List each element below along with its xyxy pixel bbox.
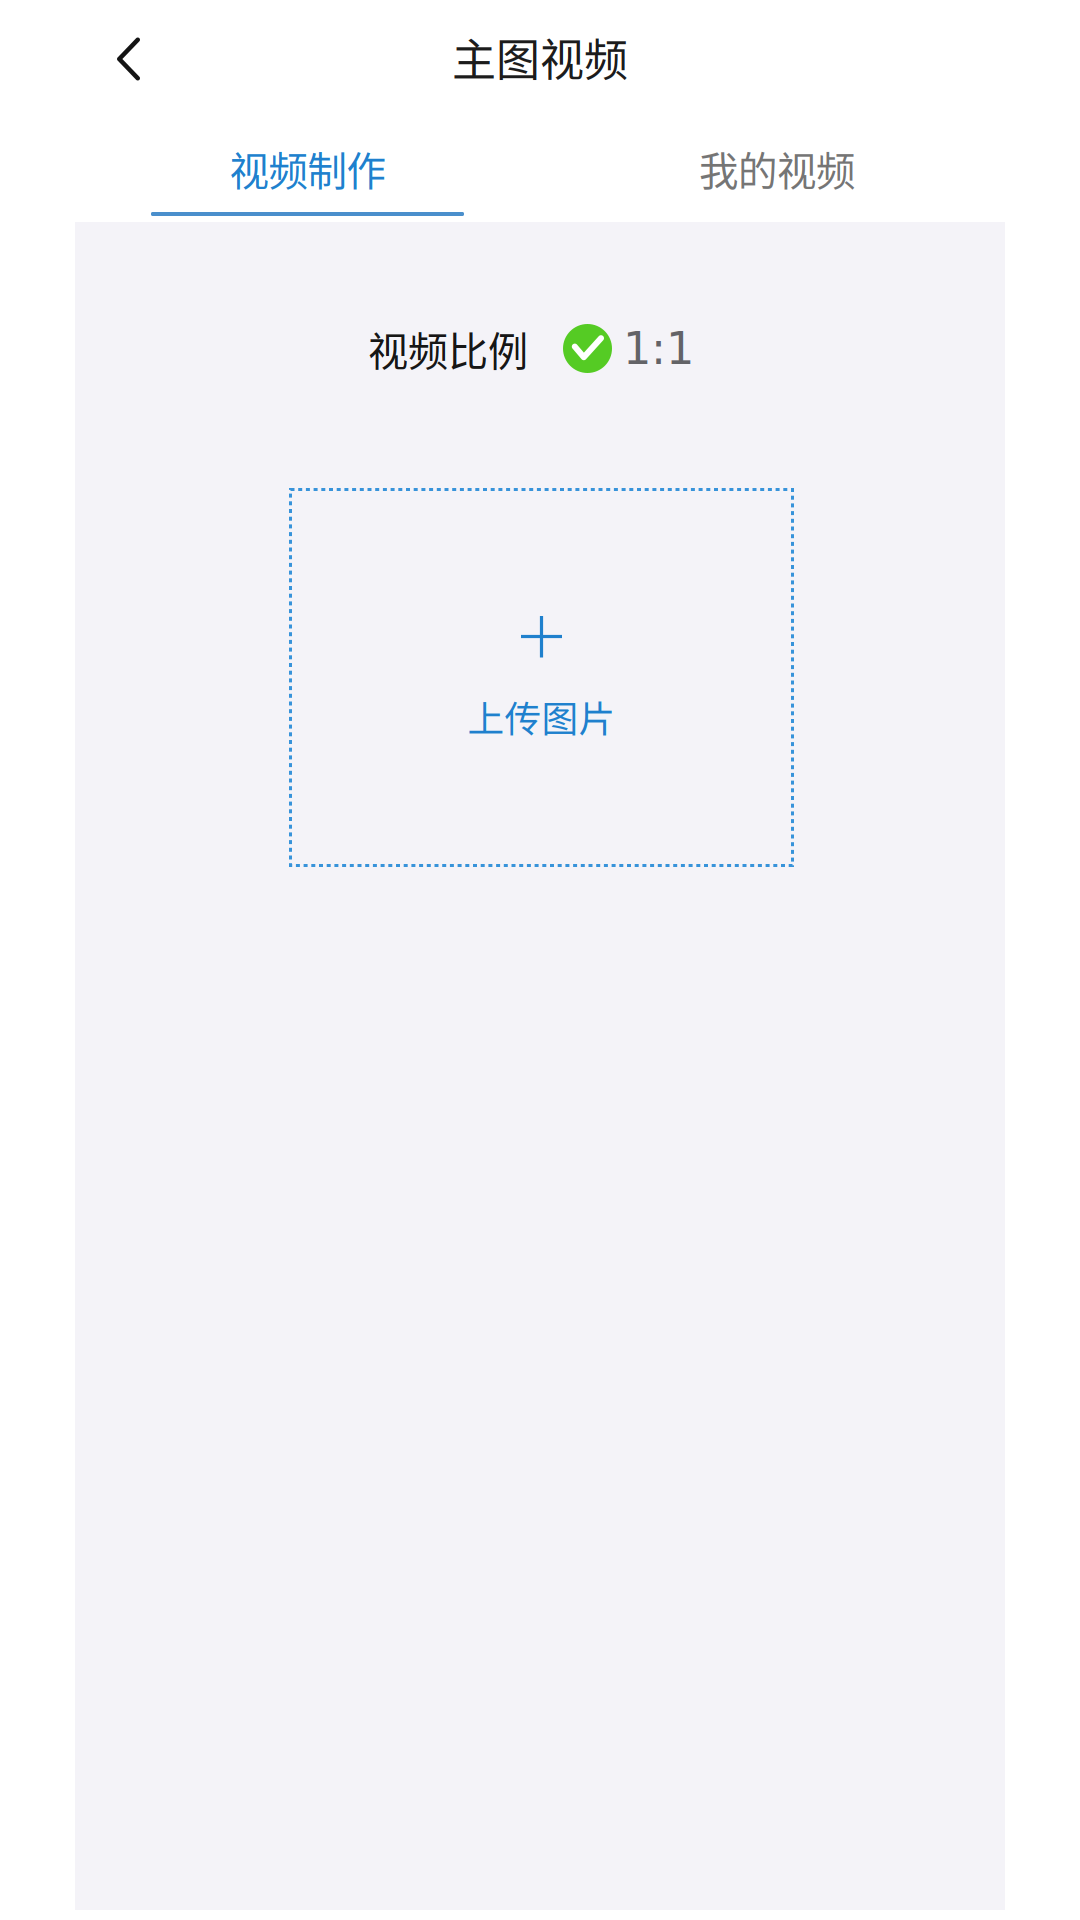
button[interactable]: 1:1 <box>563 322 694 374</box>
button[interactable]: 视频制作 <box>75 118 540 222</box>
staticText: 1:1 <box>623 322 694 374</box>
button[interactable]: Back <box>0 0 200 118</box>
staticText: 视频制作 <box>229 140 385 197</box>
staticText: 视频比例 <box>368 319 528 377</box>
button[interactable]: 我的视频 <box>540 118 1005 222</box>
staticText: 我的视频 <box>699 140 855 197</box>
button[interactable]: 上传图片 <box>289 488 794 867</box>
staticText: 上传图片 <box>467 690 615 743</box>
staticText: 主图视频 <box>452 25 628 89</box>
